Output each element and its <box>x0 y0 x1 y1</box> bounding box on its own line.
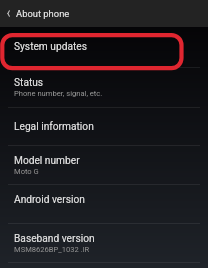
button[interactable]: Android version <box>0 185 208 224</box>
staticText: Baseband version <box>14 233 95 245</box>
button[interactable]: System updates <box>0 27 208 68</box>
staticText: Model number <box>14 155 80 167</box>
button[interactable]: Legal information <box>0 108 208 146</box>
staticText: System updates <box>14 41 87 53</box>
button[interactable]: Model number <box>0 146 208 185</box>
button[interactable]: Back <box>0 0 208 27</box>
button[interactable]: Baseband version <box>0 224 208 263</box>
staticText: Legal information <box>14 121 94 133</box>
button[interactable]: Status <box>0 68 208 108</box>
staticText: Status <box>14 77 44 89</box>
staticText: Android version <box>14 194 85 206</box>
staticText: Moto G <box>14 167 39 176</box>
staticText: About phone <box>16 8 70 19</box>
other: Back <box>3 8 14 19</box>
staticText: MSM8626BP_1032 .lR <box>14 245 90 254</box>
staticText: Phone number, signal, etc. <box>14 89 103 98</box>
